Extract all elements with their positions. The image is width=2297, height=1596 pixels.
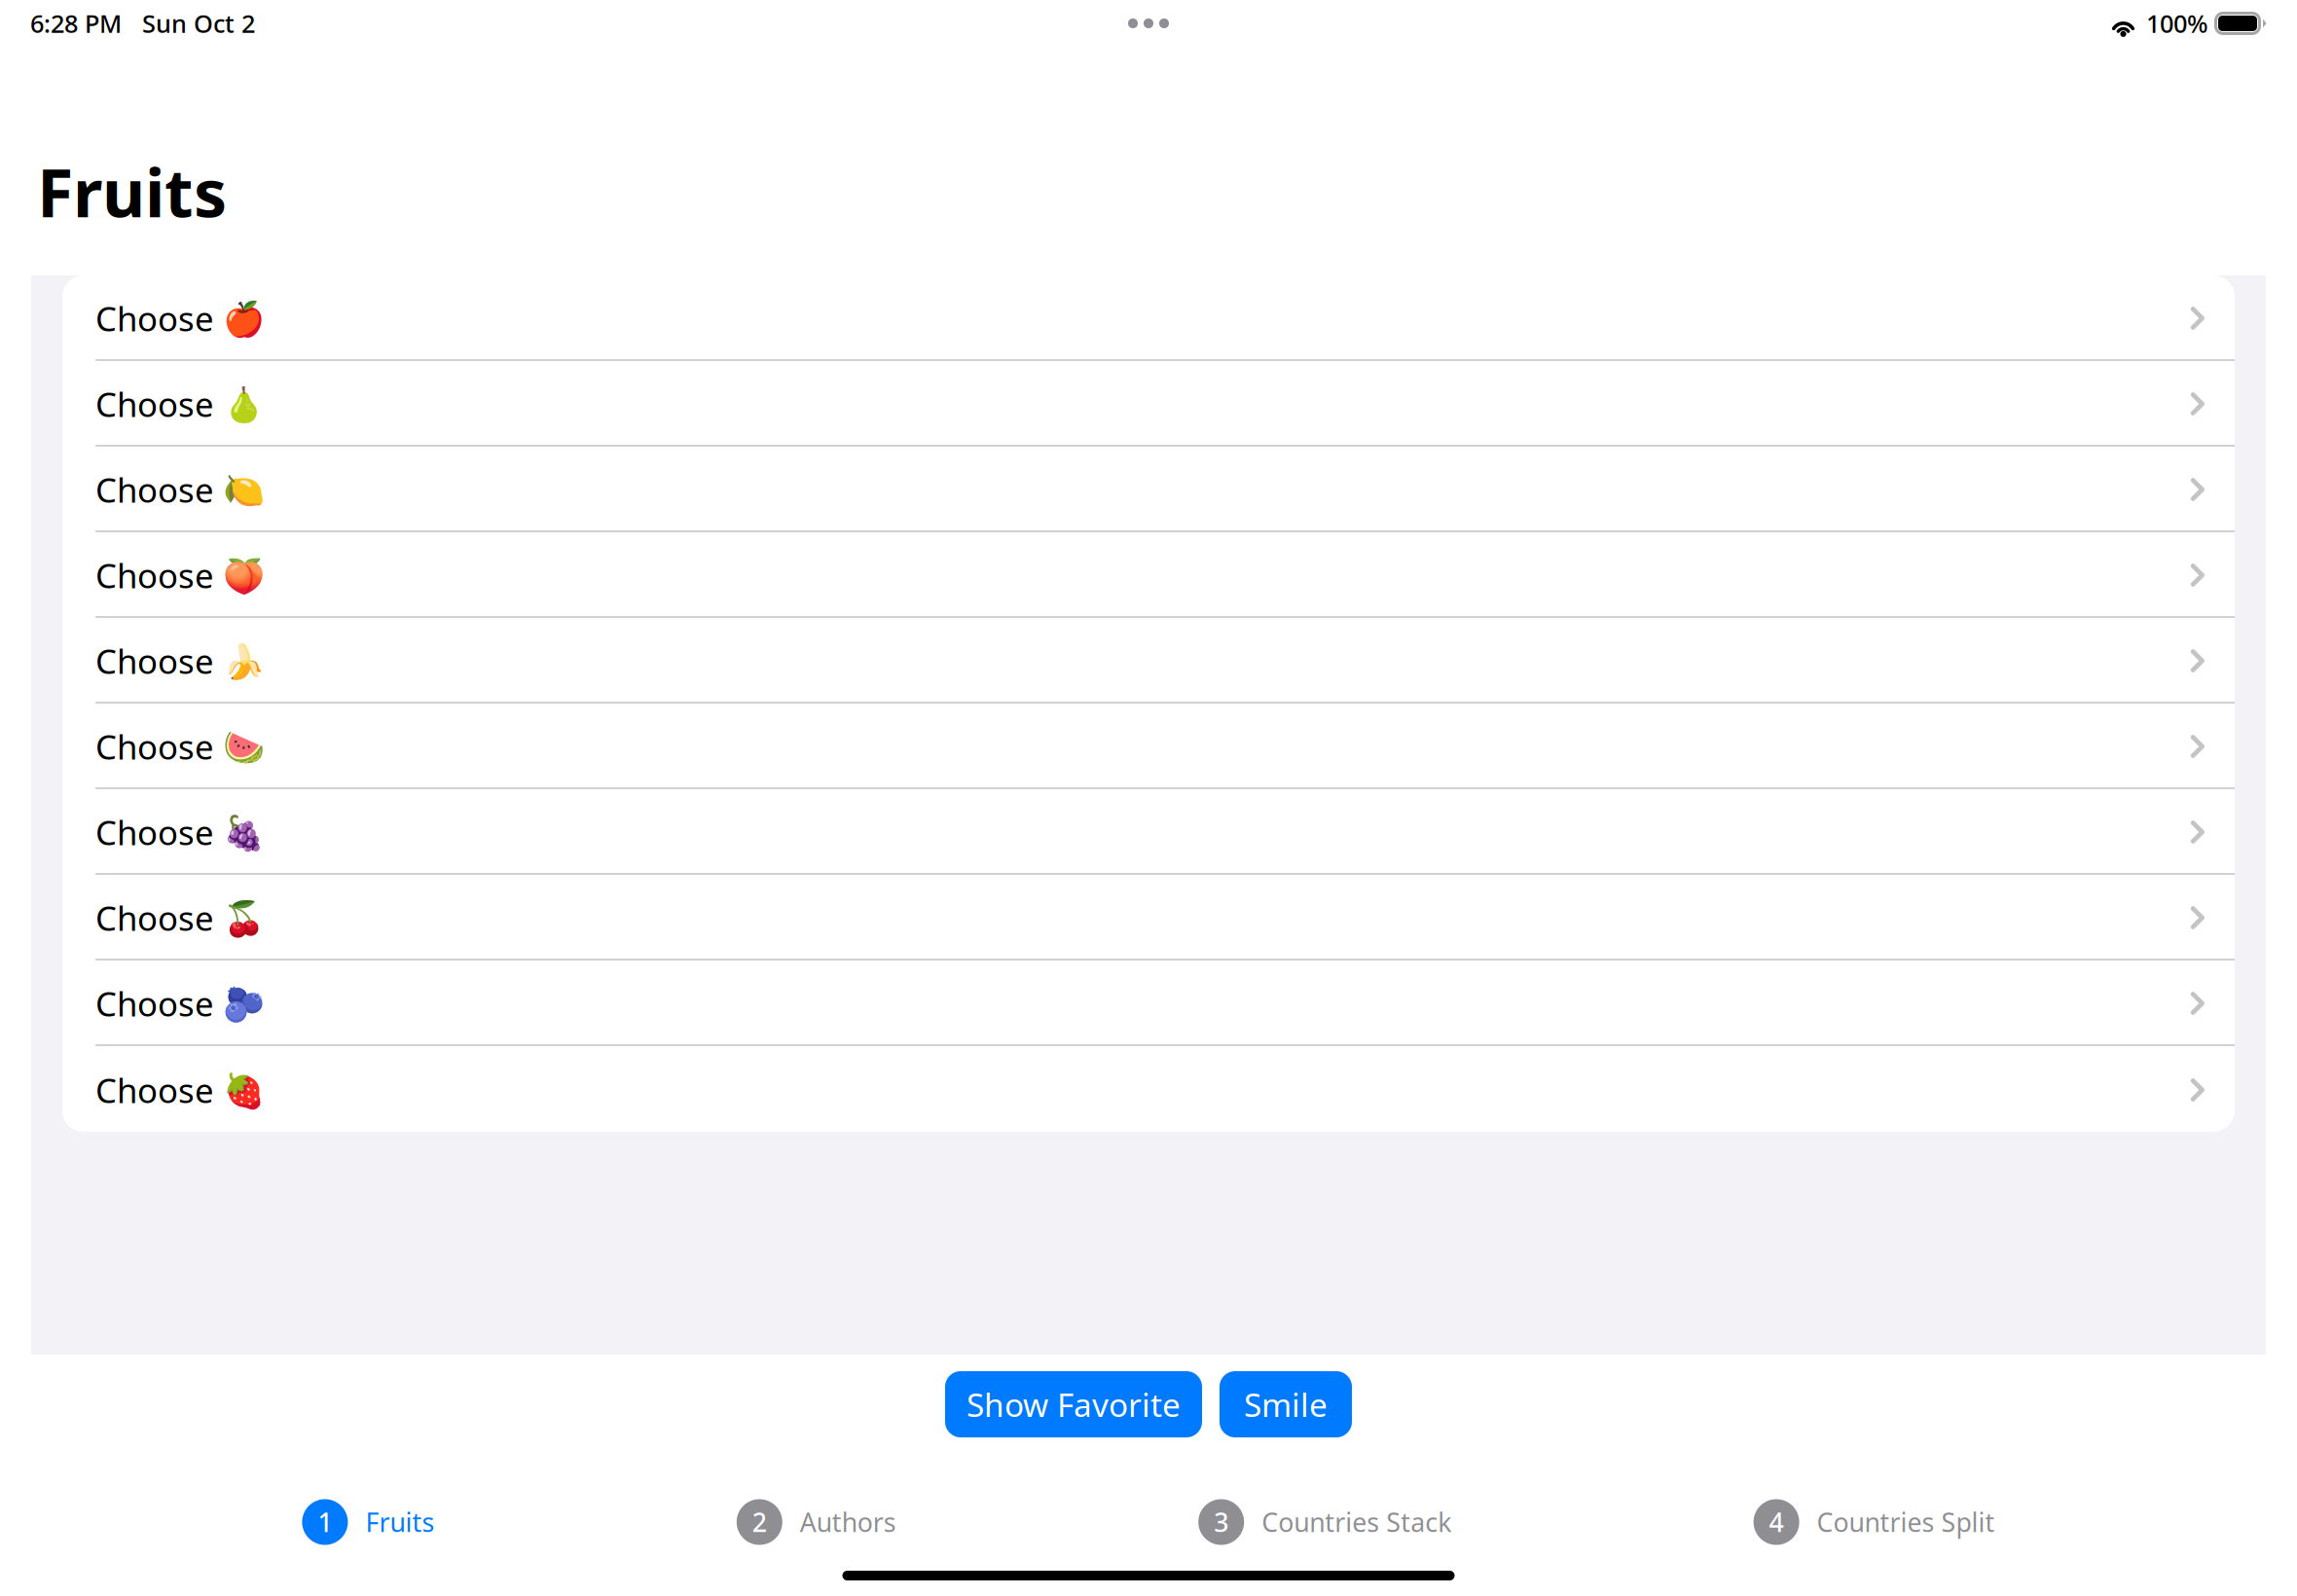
button[interactable]: Choose 🍐: [62, 361, 2235, 445]
staticText: Countries Stack: [1262, 1505, 1451, 1539]
staticText: Choose 🍌: [95, 638, 265, 683]
button[interactable]: 4: [1754, 1497, 1995, 1547]
staticText: Show Favorite: [966, 1383, 1181, 1426]
button[interactable]: Choose 🍓: [62, 1046, 2235, 1132]
staticText: 2: [752, 1505, 767, 1539]
staticText: 4: [1769, 1505, 1784, 1539]
staticText: Fruits: [37, 148, 227, 236]
staticText: Authors: [800, 1505, 896, 1539]
button[interactable]: 1: [302, 1497, 434, 1547]
staticText: 100%: [2146, 7, 2208, 40]
button[interactable]: Choose 🍉: [62, 704, 2235, 787]
button[interactable]: Choose 🍌: [62, 618, 2235, 702]
staticText: Choose 🍐: [95, 381, 265, 426]
button[interactable]: Choose 🍑: [62, 532, 2235, 616]
button[interactable]: Choose 🫐: [62, 961, 2235, 1044]
staticText: Choose 🍋: [95, 467, 265, 512]
staticText: Choose 🍉: [95, 724, 265, 769]
staticText: 6:28 PM Sun Oct 2: [30, 7, 255, 40]
staticText: Fruits: [365, 1505, 434, 1539]
button[interactable]: Choose 🍒: [62, 875, 2235, 959]
staticText: Choose 🍓: [95, 1068, 265, 1112]
staticText: Choose 🫐: [95, 981, 265, 1026]
button[interactable]: Smile: [1220, 1371, 1352, 1437]
staticText: Choose 🍇: [95, 810, 265, 854]
staticText: Choose 🍎: [95, 296, 265, 341]
button[interactable]: 3: [1198, 1497, 1451, 1547]
button[interactable]: Choose 🍇: [62, 789, 2235, 873]
staticText: Countries Split: [1817, 1505, 1995, 1539]
staticText: 3: [1214, 1505, 1229, 1539]
button[interactable]: Choose 🍋: [62, 447, 2235, 530]
button[interactable]: Choose 🍎: [62, 275, 2235, 359]
staticText: Choose 🍑: [95, 553, 265, 598]
staticText: 1: [318, 1505, 332, 1539]
staticText: Choose 🍒: [95, 895, 265, 940]
staticText: Smile: [1244, 1383, 1328, 1426]
button[interactable]: Show Favorite: [945, 1371, 1202, 1437]
button[interactable]: 2: [737, 1497, 896, 1547]
